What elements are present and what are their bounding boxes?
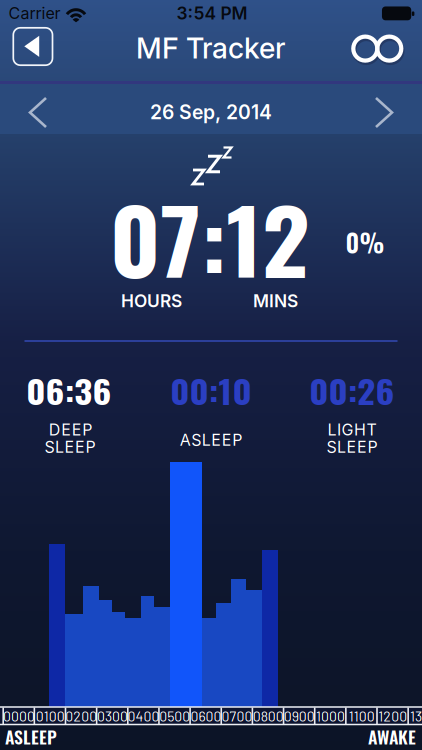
- staticText: ASLEEP: [5, 723, 57, 750]
- staticText: 00:10: [173, 366, 249, 414]
- staticText: 0900: [284, 707, 315, 724]
- staticText: Carrier: [8, 4, 60, 23]
- staticText: 0800: [253, 707, 284, 724]
- staticText: 1300: [410, 707, 422, 724]
- button[interactable]: Sync: [347, 31, 407, 67]
- staticText: 07:12: [114, 173, 304, 303]
- staticText: MF Tracker: [136, 31, 286, 65]
- staticText: 26 Sep, 2014: [150, 101, 272, 124]
- staticText: SLEEP: [44, 437, 95, 457]
- staticText: 0000: [3, 707, 35, 724]
- staticText: 0300: [97, 707, 128, 724]
- staticText: 0500: [159, 707, 190, 724]
- button[interactable]: Next day: [362, 90, 406, 134]
- staticText: 0%: [345, 223, 384, 261]
- staticText: 00:26: [312, 366, 392, 414]
- staticText: ASLEEP: [180, 430, 242, 450]
- staticText: 0400: [128, 707, 160, 724]
- staticText: DEEP: [49, 420, 92, 439]
- staticText: 0600: [190, 707, 221, 724]
- staticText: AWAKE: [368, 723, 416, 750]
- staticText: 0200: [65, 707, 97, 724]
- staticText: HOURS: [121, 290, 182, 311]
- staticText: 06:36: [29, 366, 109, 414]
- staticText: 1100: [349, 707, 375, 724]
- staticText: 1200: [378, 707, 407, 724]
- staticText: MINS: [253, 290, 298, 311]
- staticText: 0100: [36, 707, 65, 724]
- staticText: 1000: [316, 707, 345, 724]
- staticText: LIGHT: [327, 420, 376, 439]
- button[interactable]: Back: [11, 24, 55, 68]
- staticText: 0700: [221, 707, 252, 724]
- staticText: SLEEP: [326, 437, 377, 457]
- staticText: 3:54 PM: [176, 3, 247, 24]
- button[interactable]: Previous day: [16, 90, 60, 134]
